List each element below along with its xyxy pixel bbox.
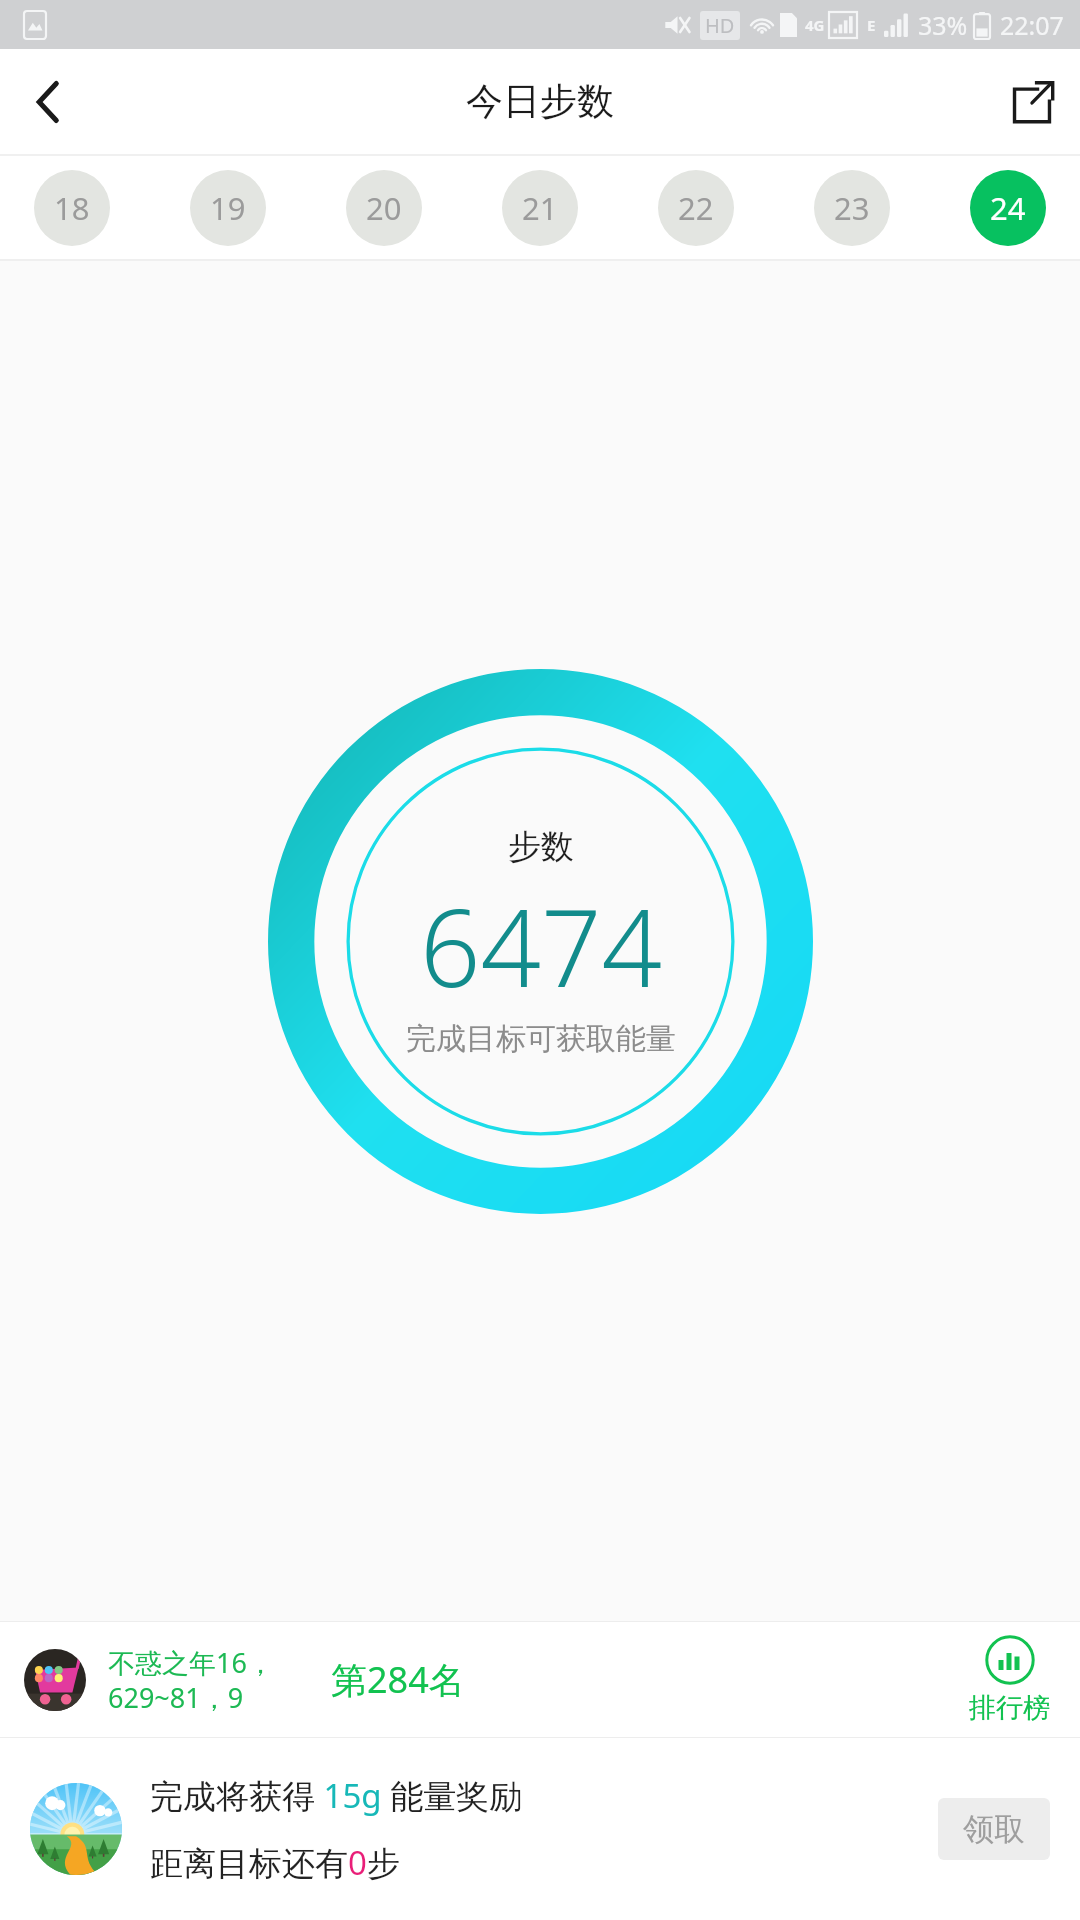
button[interactable]: 19 (190, 170, 266, 246)
button[interactable]: 24 (970, 170, 1046, 246)
button[interactable]: 22 (658, 170, 734, 246)
button[interactable]: 步数 (268, 669, 813, 1214)
button[interactable]: 领取 (938, 1798, 1050, 1860)
staticText: 4G (805, 15, 825, 35)
staticText: 24 (990, 187, 1026, 229)
staticText: 19 (210, 187, 246, 229)
staticText: 领取 (963, 1810, 1025, 1849)
staticText: 完成目标可获取能量 (406, 1020, 676, 1058)
staticText: 步数 (508, 826, 574, 868)
button[interactable]: Share (984, 54, 1080, 150)
staticText: E (867, 15, 876, 35)
staticText: 排行榜 (969, 1691, 1050, 1725)
button[interactable]: 23 (814, 170, 890, 246)
staticText: 21 (522, 187, 558, 229)
button[interactable]: Back (0, 54, 96, 150)
staticText: 22 (678, 187, 714, 229)
staticText: 23 (834, 187, 870, 229)
staticText: 33% (918, 8, 968, 42)
staticText: 6474 (420, 874, 663, 1018)
button[interactable]: 20 (346, 170, 422, 246)
staticText: 18 (54, 187, 90, 229)
button[interactable]: 18 (34, 170, 110, 246)
button[interactable]: 21 (502, 170, 578, 246)
staticText: 距离目标还有0步 (150, 1840, 400, 1885)
staticText: 第284名 (331, 1655, 465, 1704)
staticText: 22:07 (1000, 8, 1064, 42)
staticText: HD (705, 12, 735, 39)
staticText: 今日步数 (466, 78, 614, 125)
button[interactable]: 不惑之年16，629~81，9 (0, 1622, 1080, 1737)
staticText: 不惑之年16，629~81，9 (108, 1644, 313, 1716)
button[interactable]: 排行榜 (963, 1635, 1056, 1725)
button[interactable]: 完成将获得 15g 能量奖励 (0, 1738, 1080, 1920)
staticText: 20 (366, 187, 402, 229)
staticText: 完成将获得 15g 能量奖励 (150, 1773, 523, 1818)
